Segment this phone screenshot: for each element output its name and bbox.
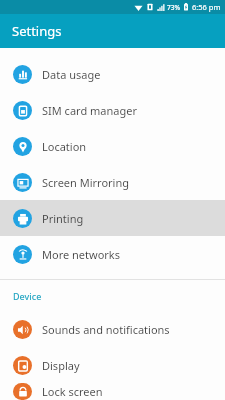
- button[interactable]: Lock screen: [0, 383, 225, 400]
- button[interactable]: Sounds and notifications: [0, 311, 225, 347]
- staticText: Printing: [42, 211, 84, 226]
- button[interactable]: Screen Mirroring: [0, 164, 225, 200]
- staticText: Lock screen: [42, 384, 103, 399]
- staticText: Display: [42, 358, 80, 373]
- button[interactable]: More networks: [0, 236, 225, 272]
- staticText: Location: [42, 139, 87, 154]
- staticText: Settings: [12, 22, 62, 40]
- button[interactable]: SIM card manager: [0, 92, 225, 128]
- staticText: 6:56 pm: [192, 2, 221, 12]
- button[interactable]: Display: [0, 347, 225, 383]
- button[interactable]: Location: [0, 128, 225, 164]
- staticText: More networks: [42, 247, 120, 262]
- staticText: Sounds and notifications: [42, 322, 170, 337]
- button[interactable]: Data usage: [0, 56, 225, 92]
- button[interactable]: Printing: [0, 200, 225, 236]
- staticText: Data usage: [42, 67, 101, 82]
- staticText: SIM card manager: [42, 103, 137, 118]
- staticText: Screen Mirroring: [42, 175, 129, 190]
- staticText: 73%: [167, 3, 180, 12]
- staticText: Device: [13, 290, 42, 302]
